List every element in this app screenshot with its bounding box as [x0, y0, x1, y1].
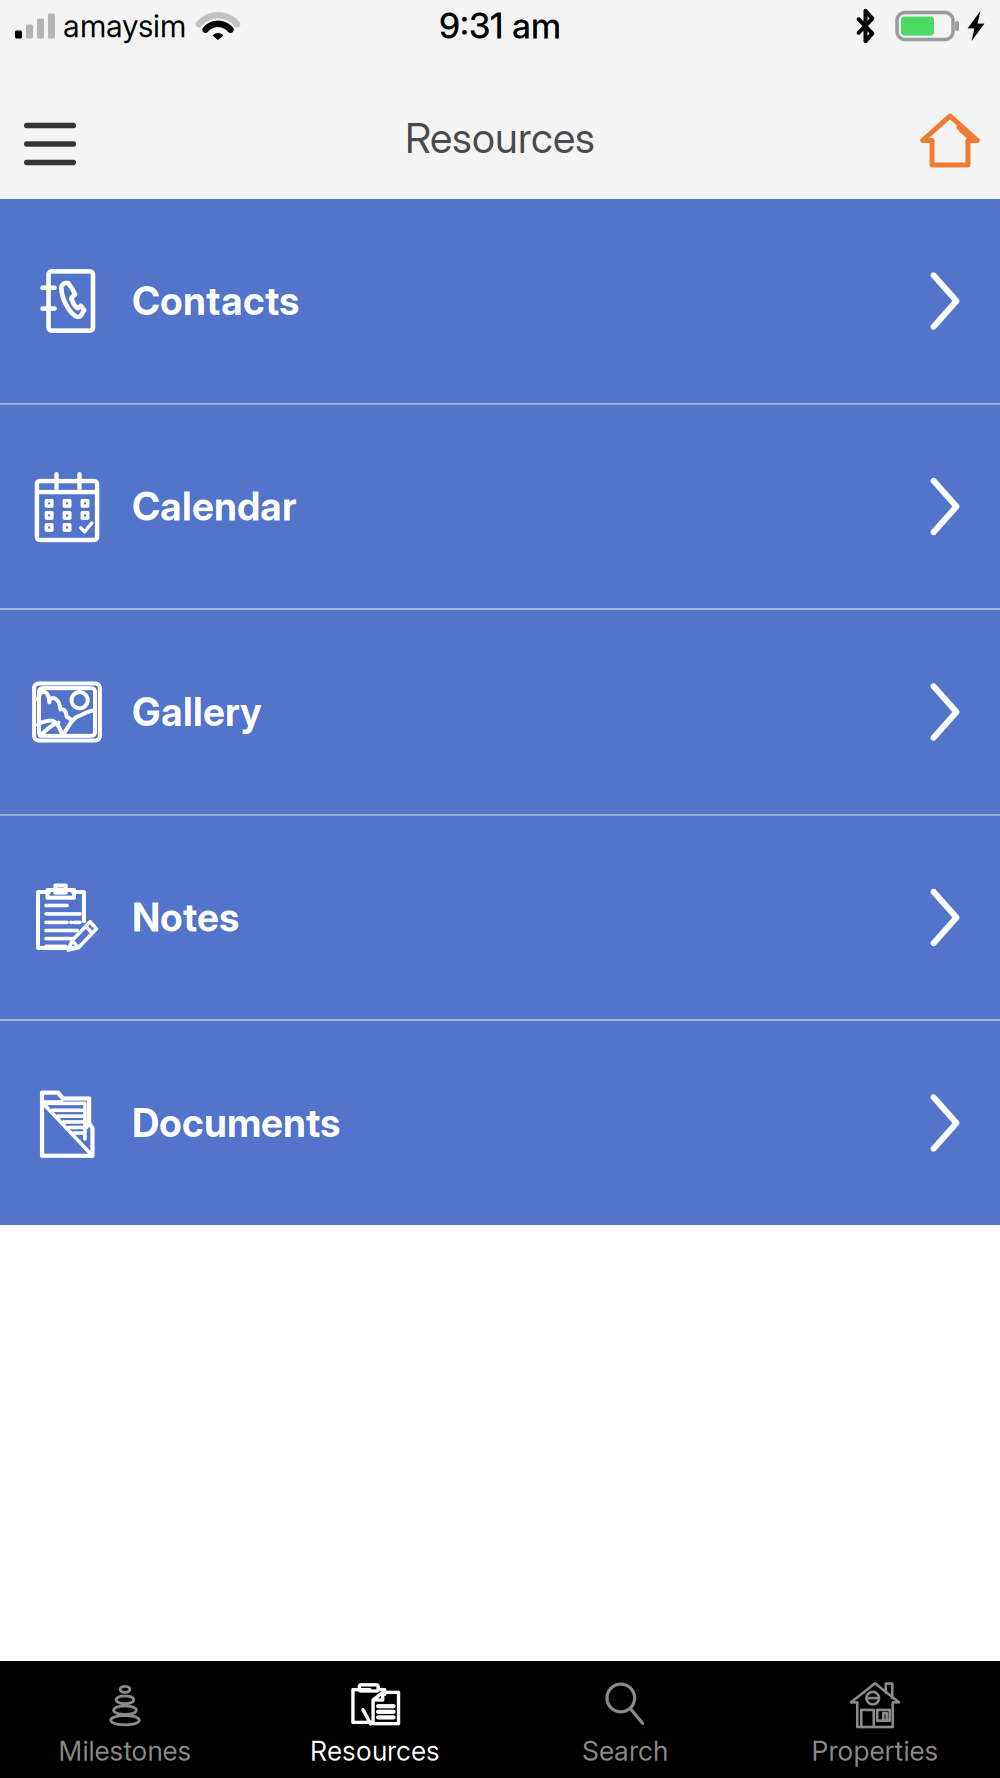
staticText: Contacts	[132, 278, 299, 324]
staticText: Gallery	[132, 689, 262, 735]
button[interactable]: Home	[900, 77, 1000, 199]
button[interactable]: Gallery	[0, 610, 1000, 814]
staticText: 9:31 am	[439, 5, 561, 47]
button[interactable]: Menu	[0, 77, 100, 199]
button[interactable]: Documents	[0, 1021, 1000, 1225]
staticText: Search	[582, 1735, 668, 1767]
staticText: Notes	[132, 894, 239, 941]
staticText: Calendar	[132, 483, 297, 530]
button[interactable]: Calendar	[0, 404, 1000, 608]
staticText: Properties	[811, 1735, 938, 1767]
button[interactable]: Search	[500, 1661, 750, 1778]
button[interactable]: Properties	[750, 1661, 1000, 1778]
button[interactable]: Resources	[250, 1661, 500, 1778]
button[interactable]: Milestones	[0, 1661, 250, 1778]
staticText: amaysim	[63, 7, 186, 44]
staticText: Resources	[310, 1735, 440, 1767]
staticText: Resources	[405, 113, 595, 163]
staticText: Milestones	[58, 1735, 191, 1767]
staticText: Documents	[132, 1100, 340, 1146]
button[interactable]: Contacts	[0, 199, 1000, 403]
button[interactable]: Notes	[0, 815, 1000, 1019]
